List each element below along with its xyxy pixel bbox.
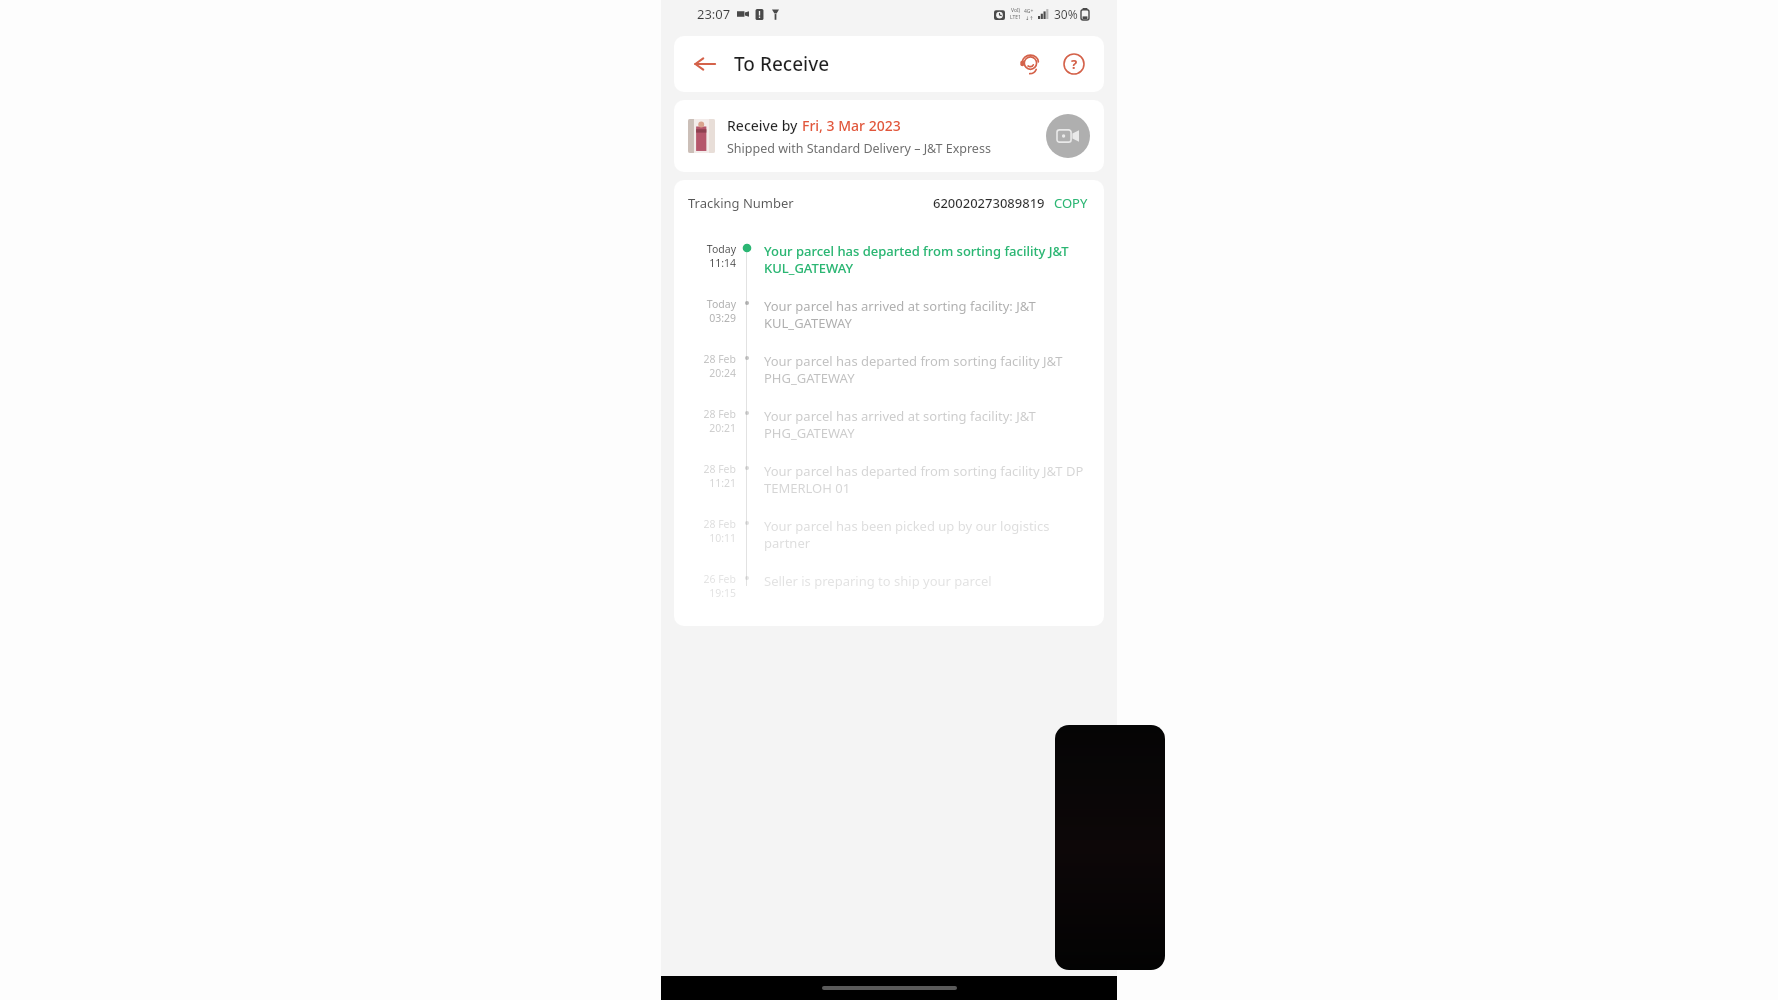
staticText: Today [706, 242, 736, 256]
staticText: 23:07 [697, 5, 731, 23]
staticText: 30% [1054, 6, 1078, 22]
staticText: Your parcel has arrived at sorting facil… [764, 407, 1088, 442]
staticText: 28 Feb [703, 462, 736, 476]
staticText: Your parcel has been picked up by our lo… [764, 517, 1088, 552]
staticText: To Receive [734, 51, 830, 77]
staticText: ? [1071, 55, 1078, 73]
staticText: Your parcel has departed from sorting fa… [764, 242, 1088, 277]
button[interactable]: Today [674, 287, 1104, 342]
staticText: 11:21 [709, 476, 736, 490]
staticText: Your parcel has departed from sorting fa… [764, 462, 1088, 497]
staticText: Today [706, 297, 736, 311]
staticText: VoI) [1011, 7, 1021, 14]
staticText: Receive by [727, 116, 802, 135]
button[interactable]: Receive by [674, 100, 1104, 172]
staticText: 10:11 [709, 531, 736, 545]
staticText: 26 Feb [703, 572, 736, 586]
staticText: COPY [1054, 194, 1088, 212]
staticText: Tracking Number [688, 194, 794, 212]
button[interactable]: 28 Feb [674, 452, 1104, 507]
staticText: 11:14 [709, 256, 736, 270]
staticText: ↓↑ [1025, 15, 1034, 21]
staticText: 19:15 [709, 586, 736, 600]
button[interactable]: Help [1058, 48, 1090, 80]
staticText: 28 Feb [703, 352, 736, 366]
button[interactable]: Customer support [1014, 48, 1046, 80]
staticText: 03:29 [709, 311, 736, 325]
button[interactable]: 28 Feb [674, 507, 1104, 562]
staticText: Shipped with Standard Delivery – J&T Exp… [727, 140, 991, 157]
staticText: 20:24 [709, 366, 736, 380]
button[interactable]: Today [674, 232, 1104, 287]
staticText: Your parcel has departed from sorting fa… [764, 352, 1088, 387]
button[interactable]: COPY [1052, 191, 1090, 215]
staticText: 28 Feb [703, 517, 736, 531]
staticText: Fri, 3 Mar 2023 [802, 116, 901, 135]
staticText: 20:21 [709, 421, 736, 435]
button[interactable]: 28 Feb [674, 397, 1104, 452]
button[interactable]: 26 Feb [674, 562, 1104, 610]
staticText: Seller is preparing to ship your parcel [764, 572, 1088, 590]
staticText: 620020273089819 [933, 194, 1045, 212]
staticText: LTE1 [1010, 14, 1021, 21]
staticText: 28 Feb [703, 407, 736, 421]
button[interactable]: 28 Feb [674, 342, 1104, 397]
staticText: Your parcel has arrived at sorting facil… [764, 297, 1088, 332]
button[interactable]: Back [688, 47, 722, 81]
staticText: 4G+ [1024, 8, 1034, 15]
button[interactable]: Parcel video [1046, 114, 1090, 158]
button[interactable]: Video preview [1055, 725, 1165, 970]
